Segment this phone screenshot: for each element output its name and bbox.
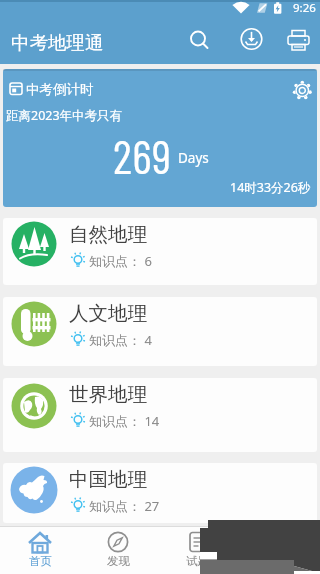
staticText: 人文地理: [69, 301, 147, 326]
staticText: 首页: [29, 554, 52, 568]
staticText: 中考地理通: [11, 31, 104, 54]
staticText: 自然地理: [69, 222, 147, 247]
button[interactable]: [236, 527, 316, 574]
staticText: 距离2023年中考只有: [6, 107, 123, 124]
staticText: 知识点： 6: [89, 252, 152, 270]
staticText: 发现: [107, 554, 130, 568]
button[interactable]: [3, 297, 317, 366]
staticText: 14时33分26秒: [230, 179, 311, 196]
staticText: 世界地理: [69, 382, 147, 407]
button[interactable]: [157, 527, 237, 574]
staticText: 知识点： 27: [89, 497, 160, 515]
button[interactable]: [3, 463, 317, 523]
button[interactable]: [178, 19, 218, 59]
button[interactable]: [279, 19, 319, 59]
staticText: 中考倒计时: [26, 81, 94, 98]
staticText: 知识点： 14: [89, 412, 160, 430]
staticText: Days: [178, 149, 209, 167]
staticText: 269: [113, 127, 172, 183]
staticText: 知识点： 4: [89, 331, 152, 349]
staticText: 中国地理: [69, 467, 147, 492]
button[interactable]: [3, 378, 317, 452]
staticText: 9:26: [293, 0, 316, 15]
button[interactable]: [231, 19, 271, 59]
button[interactable]: [3, 69, 317, 207]
button[interactable]: [78, 527, 158, 574]
staticText: 试题: [186, 554, 209, 568]
staticText: 我的: [265, 554, 288, 568]
button[interactable]: [0, 527, 80, 574]
button[interactable]: [3, 218, 317, 285]
button[interactable]: [286, 74, 318, 106]
